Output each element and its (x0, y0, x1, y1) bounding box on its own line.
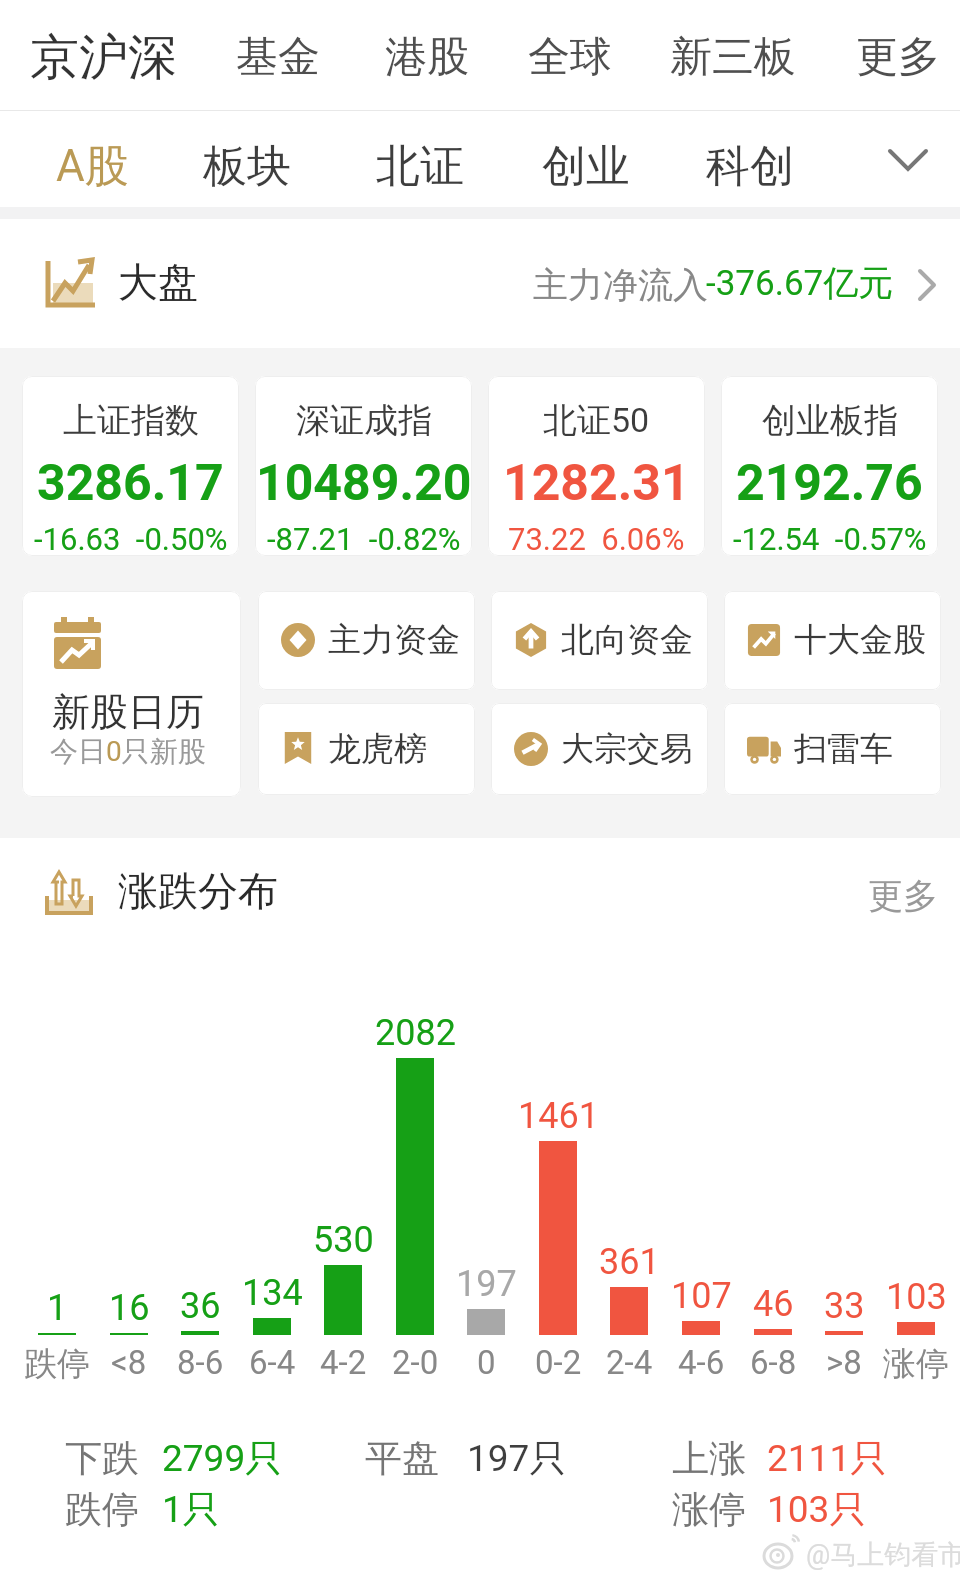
staticText: -12.54 -0.57% (733, 521, 927, 556)
staticText: 涨停 (883, 1343, 949, 1385)
button[interactable]: 港股 (0, 0, 84, 53)
staticText: 73.22 6.06% (508, 521, 685, 556)
staticText: 1 (47, 1287, 68, 1329)
staticText: 大宗交易 (561, 728, 693, 770)
staticText: 下跌 (65, 1435, 139, 1482)
button[interactable]: 扫雷车 (724, 703, 941, 795)
staticText: 3286.17 (37, 454, 224, 513)
button[interactable] (888, 149, 928, 171)
staticText: 361 (599, 1241, 660, 1283)
staticText: 530 (313, 1219, 374, 1261)
staticText: 8-6 (177, 1343, 224, 1382)
button[interactable]: 十大金股 (724, 591, 941, 690)
button[interactable]: 上证指数 (22, 376, 239, 556)
staticText: 6-4 (249, 1343, 296, 1382)
staticText: 十大金股 (794, 619, 926, 661)
staticText: 0 (477, 1343, 496, 1382)
staticText: <8 (111, 1343, 147, 1382)
staticText: 2082 (375, 1012, 456, 1054)
staticText: 4-6 (678, 1343, 725, 1382)
staticText: 2192.76 (736, 454, 923, 513)
staticText: 大盘 (118, 257, 198, 307)
staticText: 北证50 (543, 399, 650, 442)
staticText: 36 (180, 1285, 221, 1327)
staticText: 10489.20 (256, 454, 472, 513)
button[interactable]: 更多 (0, 0, 84, 53)
button[interactable]: 北向资金 (491, 591, 708, 690)
button[interactable]: 北证 (0, 111, 88, 166)
staticText: 197只 (467, 1435, 567, 1482)
staticText: 上涨 (672, 1435, 746, 1482)
button[interactable]: 创业 (0, 111, 88, 166)
button[interactable]: 新股日历 (22, 591, 241, 797)
staticText: 103 (886, 1276, 947, 1318)
staticText: 4-2 (320, 1343, 367, 1382)
staticText: 龙虎榜 (328, 728, 427, 770)
button[interactable]: 创业板指 (721, 376, 938, 556)
staticText: -16.63 -0.50% (34, 521, 228, 556)
staticText: 2-0 (392, 1343, 439, 1382)
staticText: -376.67亿元 (706, 261, 894, 305)
staticText: 主力净流入 (533, 263, 708, 307)
staticText: >8 (826, 1343, 862, 1382)
staticText: 1461 (518, 1095, 599, 1137)
button[interactable]: 基金 (0, 0, 84, 53)
button[interactable]: 北证50 (488, 376, 705, 556)
staticText: 平盘 (365, 1435, 439, 1482)
staticText: 深证成指 (296, 399, 432, 442)
button[interactable]: 更多 (0, 838, 70, 882)
staticText: 扫雷车 (794, 728, 893, 770)
staticText: 2-4 (606, 1343, 653, 1382)
button[interactable]: 科创 (0, 111, 88, 166)
staticText: 0-2 (535, 1343, 582, 1382)
staticText: 107 (671, 1275, 732, 1317)
button[interactable]: 龙虎榜 (258, 703, 475, 795)
button[interactable]: A股 (0, 111, 73, 166)
button[interactable]: 大盘 (0, 219, 960, 348)
staticText: 上证指数 (63, 399, 199, 442)
staticText: 新股日历 (52, 688, 204, 736)
button[interactable]: 板块 (0, 111, 88, 166)
staticText: 主力资金 (328, 619, 460, 661)
staticText: 创业板指 (762, 399, 898, 442)
staticText: 16 (109, 1287, 150, 1329)
staticText: 今日0只新股 (50, 734, 206, 769)
staticText: 103只 (767, 1486, 867, 1533)
staticText: 1282.31 (503, 454, 690, 513)
button[interactable]: 新三板 (0, 0, 126, 53)
staticText: 北向资金 (561, 619, 693, 661)
staticText: 涨停 (672, 1486, 746, 1533)
staticText: 2799只 (162, 1435, 283, 1482)
staticText: 1只 (162, 1486, 220, 1533)
staticText: 涨跌分布 (118, 866, 278, 916)
staticText: 134 (242, 1272, 303, 1314)
button[interactable]: 京沪深 (0, 0, 147, 62)
staticText: 6-8 (750, 1343, 797, 1382)
staticText: @马上钧看市 (806, 1538, 960, 1572)
staticText: 跌停 (24, 1343, 90, 1385)
button[interactable]: 大宗交易 (491, 703, 708, 795)
staticText: 跌停 (65, 1486, 139, 1533)
button[interactable]: 主力资金 (258, 591, 475, 690)
button[interactable]: 深证成指 (255, 376, 472, 556)
staticText: -87.21 -0.82% (267, 521, 461, 556)
staticText: 46 (753, 1283, 794, 1325)
staticText: 197 (456, 1263, 517, 1305)
staticText: 2111只 (767, 1435, 888, 1482)
staticText: 33 (824, 1285, 865, 1327)
button[interactable]: 全球 (0, 0, 84, 53)
